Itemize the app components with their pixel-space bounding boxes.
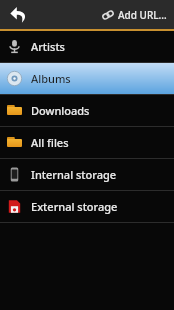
button[interactable]: Artists: [0, 31, 174, 62]
staticText: All files: [31, 135, 69, 150]
button[interactable]: Internal storage: [0, 159, 174, 190]
staticText: External storage: [31, 199, 118, 214]
staticText: Add URL...: [118, 8, 167, 22]
staticText: Internal storage: [31, 167, 117, 182]
staticText: Albums: [31, 71, 71, 86]
staticText: Downloads: [31, 103, 90, 118]
button[interactable]: All files: [0, 127, 174, 158]
button[interactable]: Albums: [0, 63, 174, 94]
button[interactable]: External storage: [0, 191, 174, 222]
staticText: Artists: [31, 39, 65, 54]
button[interactable]: Downloads: [0, 95, 174, 126]
button[interactable]: Add URL...: [96, 0, 174, 29]
button[interactable]: Back: [0, 0, 36, 29]
